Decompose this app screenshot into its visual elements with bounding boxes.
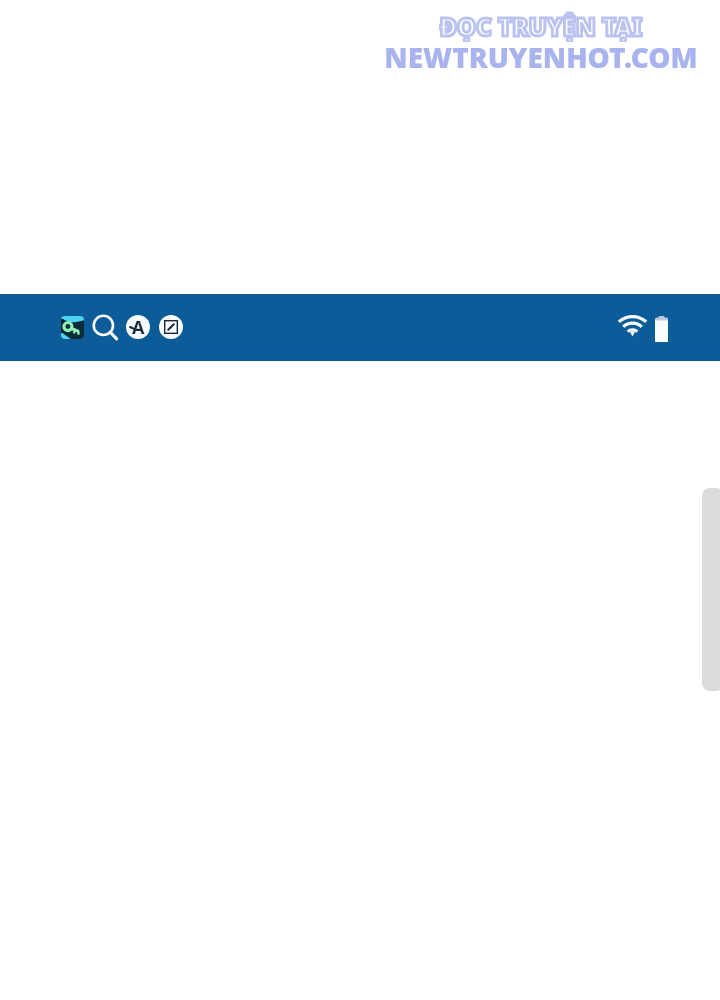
- staticText: NEWTRUYENHOT.COM: [384, 38, 698, 72]
- staticText: ĐỌC TRUYỆN TẠI: [439, 10, 643, 42]
- staticText: A: [132, 315, 145, 339]
- button[interactable]: Password manager notification: [61, 316, 84, 339]
- other: Battery: [655, 316, 668, 342]
- other: Wi-Fi: [619, 315, 646, 337]
- button[interactable]: Edit screenshot: [159, 315, 183, 339]
- button[interactable]: Search: [93, 315, 118, 340]
- button[interactable]: Accessibility: [126, 315, 150, 339]
